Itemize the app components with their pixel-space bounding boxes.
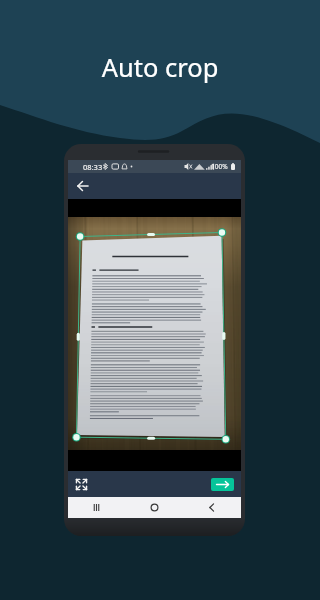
button[interactable]: Back [183,497,241,518]
staticText: 08:33 [83,162,103,172]
button[interactable]: Back [74,177,92,195]
button[interactable]: Recents [68,497,125,518]
button[interactable]: Expand [75,478,88,491]
staticText: 100% [211,162,228,171]
staticText: Auto crop [0,50,320,85]
button[interactable]: Next [211,478,234,491]
button[interactable]: Home [125,497,183,518]
